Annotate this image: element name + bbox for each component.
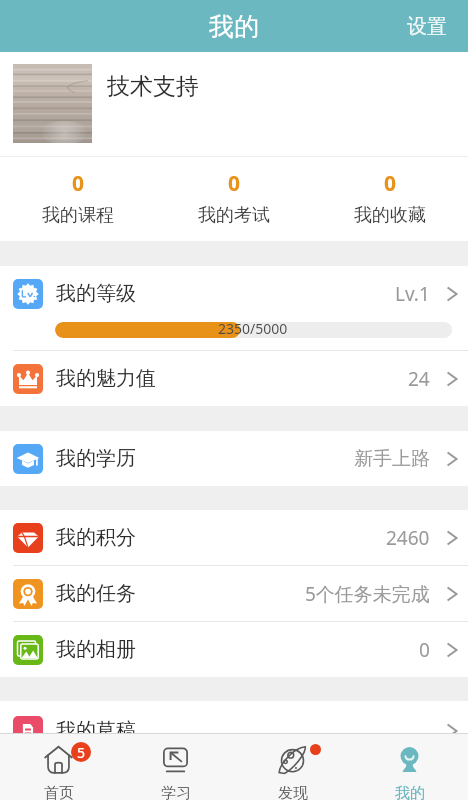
button[interactable]: 我的等级 — [0, 266, 468, 321]
staticText: 2350/5000 — [218, 319, 288, 338]
staticText: 我的课程 — [42, 204, 114, 227]
staticText: 我的 — [209, 11, 259, 42]
staticText: 我的积分 — [56, 525, 136, 550]
button[interactable]: 我的魅力值 — [0, 351, 468, 406]
button[interactable]: 我的任务 — [0, 566, 468, 621]
staticText: 5 — [77, 743, 86, 762]
staticText: 技术支持 — [107, 72, 199, 101]
staticText: 我的考试 — [198, 204, 270, 227]
button[interactable]: 我的草稿 — [0, 703, 468, 733]
button[interactable]: 我的 — [351, 734, 468, 800]
staticText: 0 — [72, 169, 85, 198]
staticText: 我的相册 — [56, 637, 136, 662]
staticText: Lv.1 — [395, 281, 430, 307]
button[interactable]: 我的学历 — [0, 431, 468, 486]
staticText: 设置 — [407, 14, 447, 38]
staticText: 5个任务未完成 — [305, 581, 430, 607]
staticText: 我的等级 — [56, 281, 136, 306]
staticText: 24 — [408, 366, 430, 392]
staticText: 发现 — [278, 784, 308, 800]
staticText: 我的收藏 — [354, 204, 426, 227]
button[interactable]: 我的积分 — [0, 510, 468, 565]
staticText: 新手上路 — [354, 447, 430, 471]
button[interactable]: 0 — [312, 157, 468, 241]
button[interactable]: 0 — [0, 157, 156, 241]
staticText: 0 — [384, 169, 397, 198]
staticText: 2460 — [386, 525, 430, 551]
staticText: 我的草稿 — [56, 718, 136, 733]
staticText: 0 — [228, 169, 241, 198]
button[interactable]: 我的相册 — [0, 622, 468, 677]
staticText: 我的 — [395, 784, 425, 800]
staticText: 0 — [419, 637, 430, 663]
button[interactable]: 5 — [0, 734, 117, 800]
button[interactable]: 发现 — [234, 734, 351, 800]
staticText: 我的任务 — [56, 581, 136, 606]
button[interactable]: 学习 — [117, 734, 234, 800]
staticText: 首页 — [44, 784, 74, 800]
staticText: 我的学历 — [56, 446, 136, 471]
button[interactable]: 技术支持 — [0, 52, 468, 156]
button[interactable]: 0 — [156, 157, 312, 241]
button[interactable]: 设置 — [389, 0, 468, 52]
staticText: 学习 — [161, 784, 191, 800]
staticText: 我的魅力值 — [56, 366, 156, 391]
